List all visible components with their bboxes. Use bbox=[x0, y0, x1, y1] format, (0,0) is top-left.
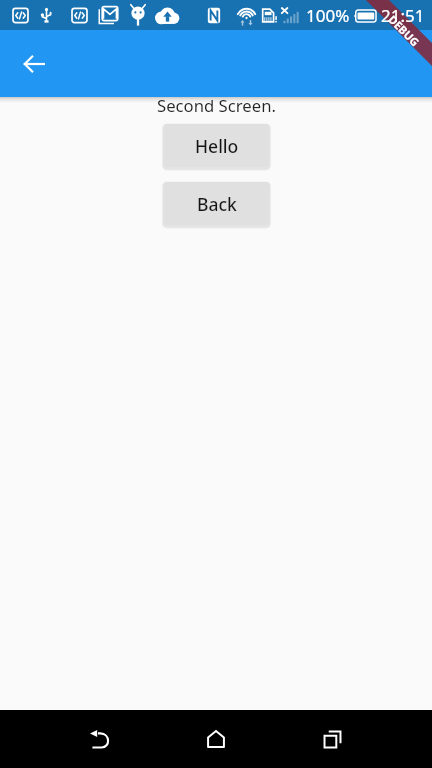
staticText: 100% bbox=[306, 4, 350, 27]
staticText: Hello bbox=[195, 134, 239, 158]
button[interactable]: Back bbox=[71, 710, 129, 768]
button[interactable]: Back bbox=[164, 182, 269, 225]
staticText: Second Screen. bbox=[157, 94, 276, 117]
button[interactable]: Home bbox=[187, 710, 245, 768]
button[interactable]: Recent apps bbox=[303, 710, 361, 768]
staticText: Back bbox=[197, 192, 237, 216]
button[interactable]: Hello bbox=[164, 124, 269, 167]
staticText: 21:51 bbox=[381, 4, 425, 27]
button[interactable]: Back bbox=[14, 44, 54, 84]
staticText: DEBUG bbox=[385, 12, 423, 49]
